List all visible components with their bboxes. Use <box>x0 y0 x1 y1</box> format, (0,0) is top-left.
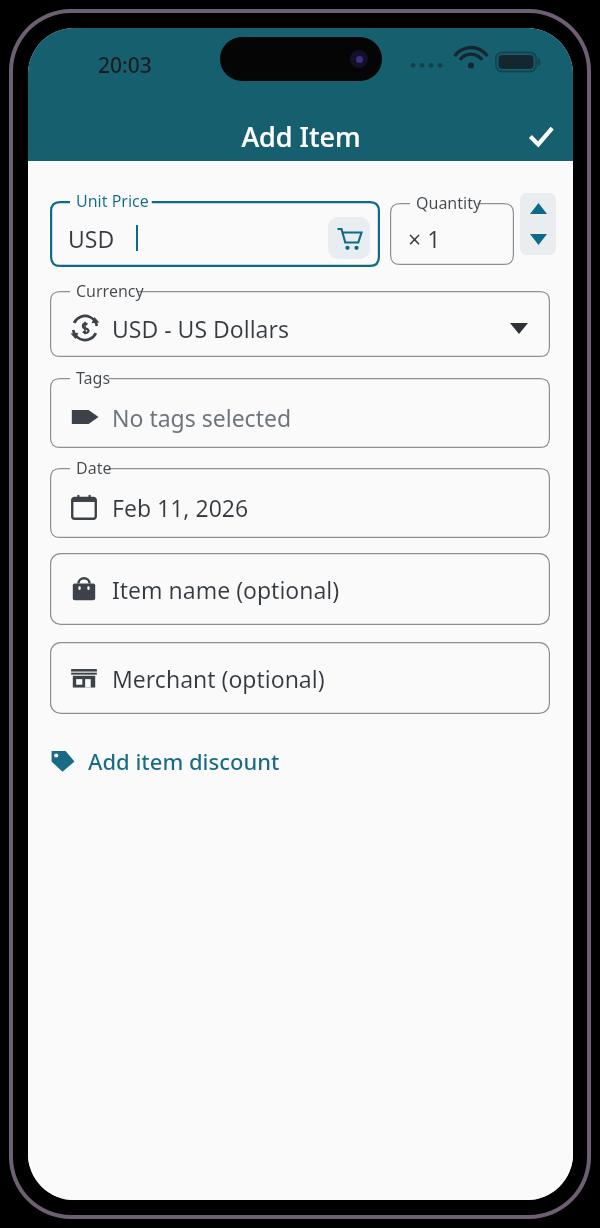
button[interactable]: Currency selector <box>50 281 550 357</box>
staticText: Merchant (optional) <box>112 663 325 694</box>
button[interactable]: Add item discount <box>50 739 280 783</box>
staticText: Tags <box>76 367 111 389</box>
button[interactable]: Tags <box>50 368 550 448</box>
button[interactable]: Save item <box>513 108 569 164</box>
button[interactable]: Increase quantity <box>520 193 556 224</box>
staticText: No tags selected <box>112 402 292 433</box>
staticText: × 1 <box>408 223 441 254</box>
button[interactable]: Quantity <box>390 193 514 265</box>
staticText: Unit Price <box>76 190 149 212</box>
button[interactable]: Merchant <box>50 642 550 714</box>
button[interactable]: Add to cart <box>328 217 370 259</box>
staticText: Add item discount <box>88 746 280 776</box>
staticText: Feb 11, 2026 <box>112 492 249 523</box>
button[interactable]: Date <box>50 458 550 538</box>
button[interactable]: Unit price <box>50 191 380 267</box>
staticText: USD - US Dollars <box>112 313 290 344</box>
button[interactable]: Decrease quantity <box>520 224 556 255</box>
staticText: Item name (optional) <box>112 574 340 605</box>
staticText: Date <box>76 457 112 479</box>
button[interactable]: Item name <box>50 553 550 625</box>
staticText: Add Item <box>241 118 361 155</box>
staticText: USD <box>68 223 115 254</box>
staticText: 20:03 <box>98 51 152 80</box>
staticText: Currency <box>76 280 144 302</box>
staticText: Quantity <box>416 192 482 214</box>
